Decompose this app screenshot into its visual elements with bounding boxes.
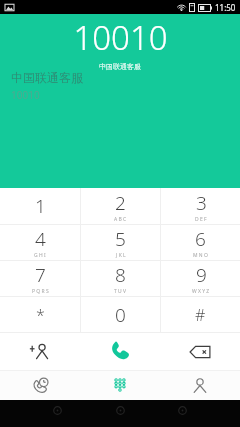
button[interactable]: Dialpad	[80, 370, 160, 400]
button[interactable]: 4	[0, 225, 80, 260]
staticText: 2	[115, 190, 126, 216]
staticText: 9	[196, 262, 207, 288]
staticText: 中国联通客服	[11, 70, 83, 85]
button[interactable]: #	[161, 297, 240, 332]
staticText: 4	[35, 226, 46, 252]
staticText: 7	[35, 262, 46, 288]
button[interactable]: Add contact	[0, 333, 80, 370]
staticText: 3	[196, 190, 207, 216]
staticText: M N O	[193, 252, 208, 259]
button[interactable]: 3	[161, 188, 240, 224]
button[interactable]: 1	[0, 188, 80, 224]
staticText: J K L	[116, 252, 126, 259]
staticText: #	[195, 304, 206, 326]
staticText: 8	[115, 262, 126, 288]
button[interactable]: Backspace	[160, 333, 240, 370]
button[interactable]: 8	[81, 261, 160, 296]
staticText: 中国联通客服	[99, 62, 141, 71]
staticText: P Q R S	[32, 288, 49, 295]
button[interactable]: 0	[81, 297, 160, 332]
staticText: G H I	[34, 252, 46, 259]
button[interactable]: *	[0, 297, 80, 332]
staticText: 10010	[73, 15, 168, 60]
button[interactable]: 2	[81, 188, 160, 224]
staticText: T U V	[114, 288, 127, 295]
button[interactable]: Recent calls	[0, 370, 80, 400]
button[interactable]: 9	[161, 261, 240, 296]
staticText: W X Y Z	[192, 288, 210, 295]
staticText: 1	[35, 193, 46, 219]
staticText: 5	[115, 226, 126, 252]
button[interactable]: 5	[81, 225, 160, 260]
staticText: 6	[195, 226, 206, 252]
button[interactable]: Call	[80, 333, 160, 370]
staticText: 11:50	[215, 2, 236, 13]
staticText: *	[36, 304, 45, 326]
staticText: 10010	[11, 88, 40, 102]
button[interactable]: Contacts	[160, 370, 240, 400]
button[interactable]: 6	[161, 225, 240, 260]
button[interactable]: 7	[0, 261, 80, 296]
staticText: D E F	[195, 216, 207, 223]
button[interactable]: 中国联通客服	[11, 70, 83, 102]
staticText: 0	[115, 302, 126, 328]
staticText: A B C	[114, 216, 127, 223]
